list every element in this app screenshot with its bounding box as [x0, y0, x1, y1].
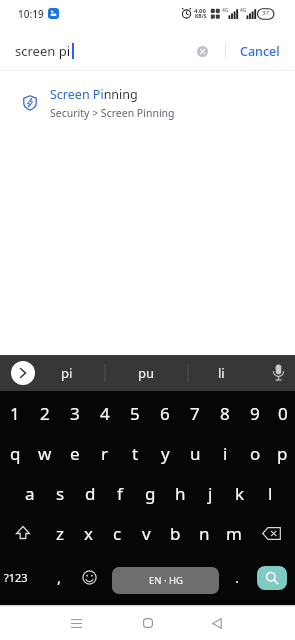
staticText: j [208, 482, 213, 505]
staticText: Cancel [240, 43, 280, 60]
staticText: li [218, 364, 225, 382]
button[interactable] [248, 513, 295, 553]
button[interactable]: f [105, 473, 135, 513]
button[interactable]: 4 [90, 393, 120, 433]
staticText: Screen Pinning [50, 86, 138, 103]
button[interactable]: z [45, 513, 74, 553]
staticText: v [142, 522, 151, 545]
button[interactable]: g [135, 473, 165, 513]
staticText: pi [61, 364, 73, 382]
staticText: g [145, 482, 156, 505]
staticText: 4.00 [194, 7, 206, 15]
button[interactable]: 6 [150, 393, 180, 433]
staticText: u [190, 442, 201, 465]
button[interactable]: l [255, 473, 285, 513]
staticText: . [235, 567, 240, 587]
button[interactable] [74, 553, 104, 597]
button[interactable] [257, 566, 287, 590]
button[interactable] [193, 42, 212, 61]
staticText: c [113, 522, 122, 545]
button[interactable]: t [120, 433, 150, 473]
staticText: 4 [100, 402, 110, 425]
button[interactable]: p [270, 433, 295, 473]
staticText: 9 [250, 402, 260, 425]
button[interactable]: d [75, 473, 105, 513]
staticText: z [56, 522, 64, 545]
button[interactable]: m [219, 513, 248, 553]
staticText: d [85, 482, 96, 505]
staticText: 8 [220, 402, 230, 425]
button[interactable]: b [161, 513, 190, 553]
staticText: 5 [130, 402, 140, 425]
staticText: , [57, 567, 62, 587]
button[interactable]: 2 [30, 393, 60, 433]
button[interactable]: li [201, 355, 241, 391]
staticText: ?123 [4, 570, 28, 585]
staticText: w [38, 442, 52, 465]
button[interactable]: e [60, 433, 90, 473]
button[interactable]: w [30, 433, 60, 473]
button[interactable]: i [210, 433, 240, 473]
button[interactable]: pu [126, 355, 166, 391]
staticText: k [235, 482, 245, 505]
staticText: 10:19 [18, 7, 44, 21]
button[interactable]: y [150, 433, 180, 473]
staticText: b [170, 522, 181, 545]
button[interactable]: Cancel [236, 39, 284, 64]
button[interactable]: 3 [60, 393, 90, 433]
staticText: i [223, 442, 228, 465]
button[interactable]: j [195, 473, 225, 513]
button[interactable]: n [190, 513, 219, 553]
staticText: EN · HG [149, 574, 183, 587]
button[interactable]: 5 [120, 393, 150, 433]
staticText: p [277, 442, 288, 465]
button[interactable]: pi [47, 355, 87, 391]
button[interactable]: ?123 [0, 553, 44, 597]
button[interactable]: x [74, 513, 103, 553]
button[interactable]: 7 [180, 393, 210, 433]
button[interactable]: k [225, 473, 255, 513]
button[interactable]: h [165, 473, 195, 513]
button[interactable]: Screen Pinning [0, 71, 295, 131]
staticText: screen pi [15, 42, 71, 60]
staticText: 2 [40, 402, 50, 425]
staticText: 4G [240, 7, 247, 14]
staticText: f [117, 482, 123, 505]
staticText: o [250, 442, 261, 465]
button[interactable]: u [180, 433, 210, 473]
button[interactable]: EN · HG [112, 567, 219, 594]
staticText: e [70, 442, 80, 465]
button[interactable]: 8 [210, 393, 240, 433]
button[interactable]: v [132, 513, 161, 553]
button[interactable]: r [90, 433, 120, 473]
button[interactable] [133, 609, 163, 637]
button[interactable]: . [222, 553, 252, 597]
button[interactable]: o [240, 433, 270, 473]
staticText: n [199, 522, 210, 545]
button[interactable]: 1 [0, 393, 30, 433]
staticText: a [25, 482, 35, 505]
staticText: r [101, 442, 109, 465]
staticText: 37 [262, 9, 269, 17]
button[interactable]: , [44, 553, 74, 597]
staticText: s [56, 482, 65, 505]
staticText: t [132, 442, 139, 465]
staticText: pu [138, 364, 155, 382]
button[interactable] [261, 355, 295, 391]
button[interactable] [11, 361, 35, 385]
button[interactable] [202, 609, 232, 637]
button[interactable] [61, 609, 91, 637]
button[interactable]: 0 [270, 393, 295, 433]
staticText: 7 [190, 402, 200, 425]
staticText: 6 [160, 402, 170, 425]
staticText: 4G [222, 7, 229, 14]
button[interactable]: c [103, 513, 132, 553]
button[interactable]: 9 [240, 393, 270, 433]
staticText: 3 [70, 402, 80, 425]
staticText: m [226, 522, 242, 545]
staticText: x [84, 522, 93, 545]
button[interactable]: s [45, 473, 75, 513]
button[interactable] [0, 513, 45, 553]
button[interactable]: q [0, 433, 30, 473]
button[interactable]: a [15, 473, 45, 513]
